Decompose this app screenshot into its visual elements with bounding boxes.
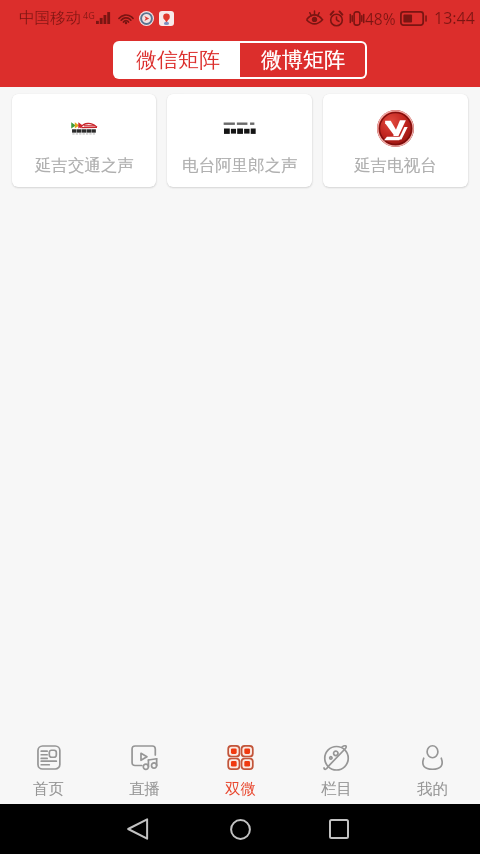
button[interactable]: 电台阿里郎之声 [167, 94, 312, 187]
staticText: 栏目 [321, 779, 352, 799]
button[interactable]: Home [215, 804, 265, 854]
staticText: 首页 [33, 779, 64, 799]
button[interactable]: 双微 [192, 700, 288, 804]
button[interactable]: 延吉交通之声 [12, 94, 156, 187]
staticText: 48% [365, 8, 396, 29]
staticText: 电台阿里郎之声 [182, 155, 298, 176]
staticText: 我的 [417, 779, 448, 799]
button[interactable]: 微博矩阵 [240, 43, 365, 77]
button[interactable]: 栏目 [288, 700, 384, 804]
button[interactable]: Back [113, 804, 163, 854]
button[interactable]: 我的 [384, 700, 480, 804]
staticText: 双微 [225, 779, 256, 799]
button[interactable]: 延吉电视台 [323, 94, 468, 187]
staticText: 13:44 [434, 7, 475, 29]
staticText: 微信矩阵 [136, 47, 220, 73]
button[interactable]: 直播 [96, 700, 192, 804]
staticText: 4G [83, 9, 95, 21]
staticText: 延吉交通之声 [35, 155, 134, 176]
button[interactable]: 微信矩阵 [115, 43, 240, 77]
staticText: 中国移动 [19, 8, 81, 28]
staticText: 延吉电视台 [354, 155, 437, 176]
button[interactable]: 首页 [0, 700, 96, 804]
staticText: 微博矩阵 [261, 47, 345, 73]
staticText: 直播 [129, 779, 160, 799]
button[interactable]: Recents [314, 804, 364, 854]
